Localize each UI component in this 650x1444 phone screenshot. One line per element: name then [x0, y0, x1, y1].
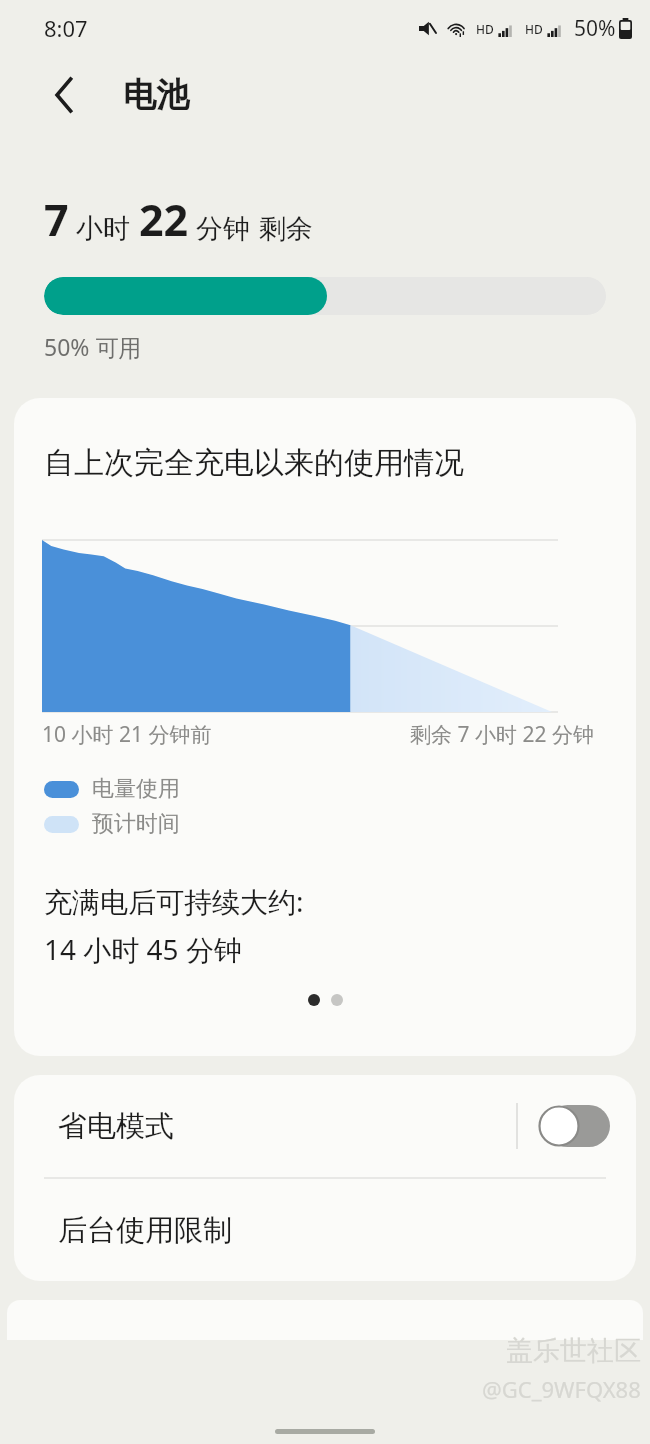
staticText: 后台使用限制: [58, 1212, 232, 1249]
button[interactable]: Back: [42, 72, 88, 118]
button[interactable]: 自上次完全充电以来的使用情况: [14, 398, 636, 1056]
staticText: 电量使用: [92, 775, 180, 803]
staticText: 预计时间: [92, 810, 180, 838]
staticText: HD: [525, 21, 543, 37]
staticText: 电池: [123, 74, 189, 116]
button[interactable]: 后台使用限制: [14, 1179, 636, 1281]
button[interactable]: 省电模式 toggle: [538, 1105, 610, 1147]
staticText: 盖乐世社区: [506, 1334, 641, 1368]
staticText: HD: [476, 21, 494, 37]
staticText: 14 小时 45 分钟: [44, 930, 242, 968]
staticText: 50%: [574, 14, 616, 43]
staticText: 剩余 7 小时 22 分钟: [410, 720, 594, 749]
staticText: 分钟: [196, 212, 250, 246]
staticText: 7: [44, 190, 69, 249]
staticText: @GC_9WFQX88: [482, 1374, 641, 1404]
staticText: 充满电后可持续大约:: [44, 882, 304, 920]
staticText: 22: [139, 190, 189, 249]
staticText: 8:07: [44, 13, 88, 43]
staticText: 10 小时 21 分钟前: [42, 720, 212, 749]
staticText: 自上次完全充电以来的使用情况: [44, 444, 464, 482]
staticText: 省电模式: [58, 1108, 174, 1145]
staticText: 剩余: [259, 212, 313, 246]
staticText: 小时: [76, 212, 130, 246]
button[interactable]: 省电模式: [14, 1075, 636, 1177]
staticText: 50% 可用: [44, 331, 142, 362]
